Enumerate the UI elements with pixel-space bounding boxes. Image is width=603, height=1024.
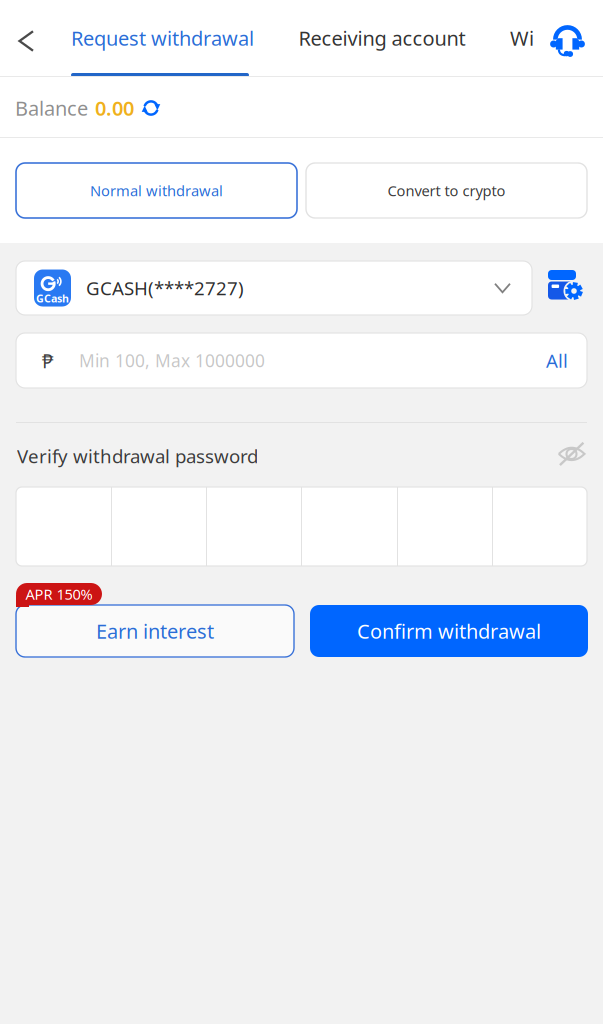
button[interactable]: Convert to crypto (306, 163, 587, 218)
button[interactable]: All (546, 348, 568, 373)
staticText: Receiving account (298, 25, 465, 51)
button[interactable]: Customer support (550, 23, 590, 61)
staticText: All (546, 348, 568, 373)
staticText: Confirm withdrawal (357, 618, 541, 644)
staticText: Min 100, Max 1000000 (79, 349, 265, 372)
button[interactable]: Earn interest (16, 605, 294, 657)
button[interactable]: Back (6, 21, 46, 61)
staticText: Convert to crypto (387, 181, 505, 200)
button[interactable]: GCash (16, 261, 532, 315)
button[interactable]: Request withdrawal (71, 22, 271, 54)
button[interactable]: Manage withdrawal accounts (548, 270, 587, 300)
staticText: Request withdrawal (71, 25, 254, 51)
staticText: GCash (36, 291, 69, 305)
button[interactable]: Show password (556, 441, 587, 467)
staticText: Normal withdrawal (90, 181, 223, 200)
staticText: Balance (15, 95, 88, 121)
staticText: Verify withdrawal password (17, 444, 258, 468)
staticText: ₱ (42, 347, 53, 374)
staticText: 0.00 (95, 95, 134, 121)
button[interactable]: Normal withdrawal (16, 163, 297, 218)
staticText: APR 150% (25, 584, 92, 604)
button[interactable]: Receiving account (296, 22, 468, 54)
button[interactable]: Confirm withdrawal (310, 605, 588, 657)
button[interactable]: Refresh balance (141, 98, 161, 118)
staticText: Wi (510, 25, 534, 51)
staticText: Earn interest (96, 618, 214, 644)
button[interactable]: Wi (510, 22, 550, 54)
staticText: GCASH(****2727) (86, 276, 244, 300)
